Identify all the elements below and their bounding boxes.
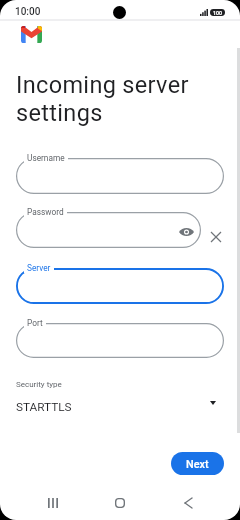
button[interactable]: Next	[171, 452, 224, 475]
staticText: Port	[27, 318, 43, 328]
staticText: 100	[213, 10, 222, 16]
button[interactable]: Username	[16, 158, 224, 194]
staticText: Username	[27, 153, 65, 163]
staticText: Security type	[16, 380, 62, 389]
button[interactable]: Security type	[0, 374, 240, 414]
staticText: STARTTLS	[16, 400, 72, 414]
button[interactable]: Clear password	[203, 224, 229, 250]
button[interactable]: Password	[16, 212, 201, 248]
staticText: Password	[27, 207, 64, 217]
button[interactable]: Show password	[175, 221, 197, 243]
button[interactable]: Home	[100, 482, 140, 520]
staticText: Incoming server settings	[16, 71, 189, 127]
button[interactable]: Recent apps	[33, 482, 73, 520]
staticText: 10:00	[15, 6, 41, 18]
button[interactable]: Server	[16, 268, 224, 304]
staticText: Next	[186, 458, 209, 471]
staticText: Server	[27, 263, 51, 273]
button[interactable]: Port	[16, 323, 224, 358]
button[interactable]: Back	[168, 482, 208, 520]
